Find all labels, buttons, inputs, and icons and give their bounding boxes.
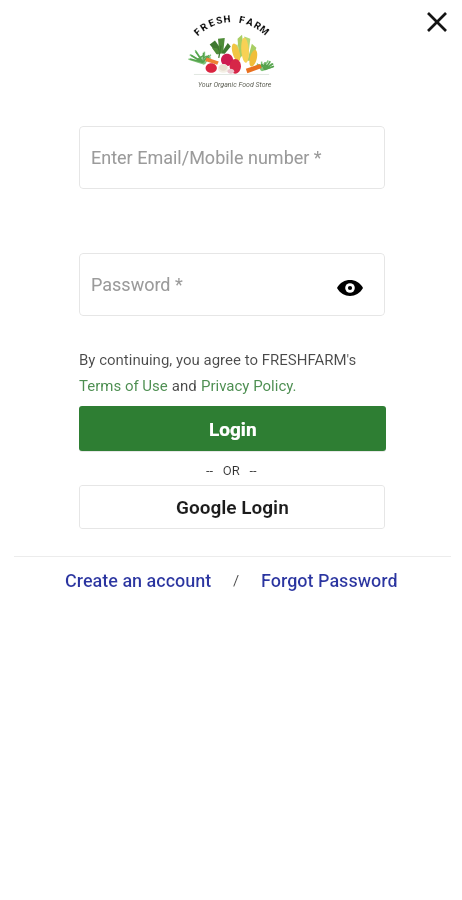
button[interactable]: Terms of Use — [79, 377, 168, 395]
button[interactable]: Forgot Password — [261, 570, 398, 591]
button[interactable]: Create an account — [65, 570, 212, 591]
staticText: Password * — [91, 274, 183, 295]
staticText: By continuing, you agree to FRESHFARM's — [79, 351, 357, 369]
button[interactable]: Password * — [79, 253, 385, 316]
button[interactable]: Login — [79, 406, 386, 451]
button[interactable]: Privacy Policy. — [201, 377, 297, 395]
staticText: -- OR -- — [206, 463, 257, 478]
button[interactable]: Show password — [335, 273, 365, 303]
button[interactable]: Enter Email/Mobile number * — [79, 126, 385, 189]
button[interactable]: Google Login — [79, 485, 385, 529]
staticText: Google Login — [176, 496, 289, 518]
staticText: Enter Email/Mobile number * — [91, 147, 322, 168]
staticText: and — [168, 377, 201, 395]
button[interactable]: Close — [418, 3, 456, 41]
staticText: Login — [209, 418, 257, 440]
staticText: / — [233, 572, 240, 590]
